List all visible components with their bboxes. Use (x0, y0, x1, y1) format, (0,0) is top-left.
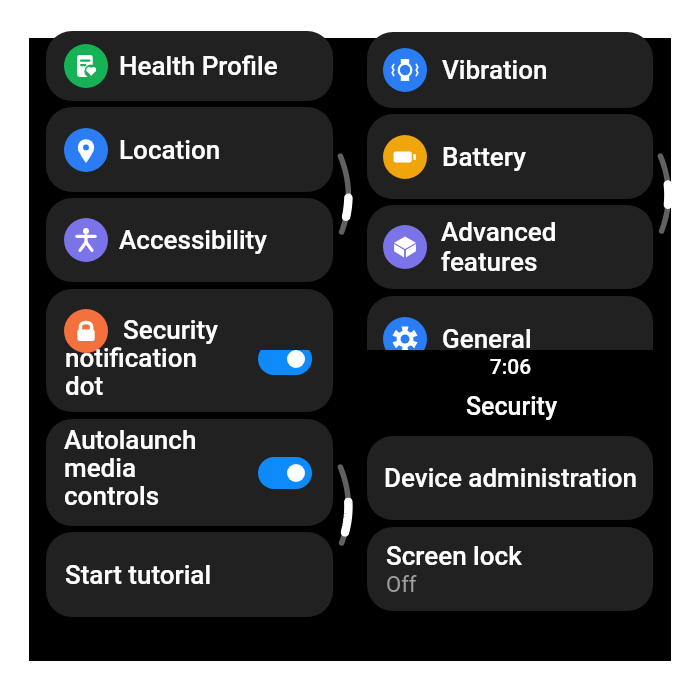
button[interactable]: Accessibility (46, 198, 333, 282)
button[interactable]: Location (46, 107, 333, 192)
button[interactable]: Battery (367, 114, 653, 199)
button[interactable]: Start tutorial (46, 532, 333, 617)
staticText: media (64, 453, 137, 483)
staticText: General (442, 324, 532, 354)
staticText: Location (119, 135, 221, 165)
button[interactable]: Autolaunch (46, 419, 333, 526)
button[interactable]: Toggle on (258, 457, 312, 489)
staticText: Autolaunch (64, 425, 197, 455)
staticText: Health Profile (119, 51, 278, 81)
button[interactable]: Advanced (367, 205, 653, 289)
staticText: Off (386, 572, 417, 598)
button[interactable]: Vibration (367, 32, 653, 108)
staticText: Battery (442, 142, 526, 172)
staticText: Screen lock (386, 541, 522, 571)
staticText: Device administration (384, 463, 638, 493)
button[interactable]: Device administration (367, 436, 653, 520)
staticText: Accessibility (119, 225, 267, 255)
button[interactable]: General (367, 296, 653, 381)
button[interactable]: Toggle on (258, 343, 312, 375)
button[interactable]: Screen lock (367, 527, 653, 611)
button[interactable]: Security (46, 289, 333, 412)
staticText: Advanced (441, 217, 557, 247)
staticText: Start tutorial (65, 560, 212, 590)
staticText: notification (65, 343, 197, 373)
staticText: controls (64, 481, 160, 511)
staticText: Vibration (442, 55, 548, 85)
staticText: dot (65, 371, 104, 401)
staticText: features (441, 247, 538, 277)
staticText: 7:06 (350, 355, 671, 380)
staticText: Security (351, 392, 672, 421)
staticText: Security (123, 315, 218, 345)
button[interactable]: Health Profile (46, 31, 333, 101)
